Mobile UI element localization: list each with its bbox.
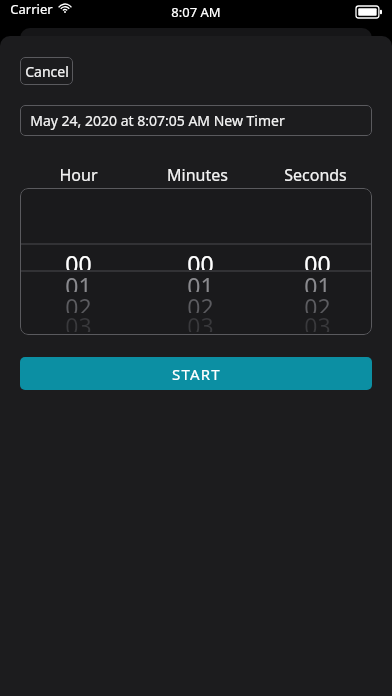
button[interactable]: Cancel bbox=[20, 57, 73, 85]
staticText: Cancel bbox=[25, 62, 69, 81]
staticText: 02 bbox=[65, 291, 92, 313]
button[interactable]: 00 bbox=[272, 188, 362, 335]
staticText: 01 bbox=[187, 270, 214, 292]
button[interactable]: START bbox=[20, 357, 372, 390]
button[interactable]: 00 bbox=[155, 188, 245, 335]
staticText: 03 bbox=[187, 310, 214, 332]
staticText: START bbox=[172, 364, 221, 384]
staticText: 03 bbox=[304, 310, 331, 332]
staticText: Seconds bbox=[284, 164, 347, 184]
button[interactable]: 00 bbox=[33, 188, 123, 335]
staticText: 02 bbox=[187, 291, 214, 313]
staticText: 01 bbox=[65, 270, 92, 292]
staticText: Hour bbox=[59, 164, 98, 184]
staticText: May 24, 2020 at 8:07:05 AM New Timer bbox=[30, 111, 285, 130]
staticText: Minutes bbox=[167, 164, 228, 184]
staticText: Carrier bbox=[10, 0, 53, 18]
staticText: 02 bbox=[304, 291, 331, 313]
staticText: 00 bbox=[187, 248, 214, 270]
staticText: 00 bbox=[65, 248, 92, 270]
staticText: 03 bbox=[65, 310, 92, 332]
staticText: 00 bbox=[304, 248, 331, 270]
staticText: 8:07 AM bbox=[171, 3, 221, 21]
button[interactable]: May 24, 2020 at 8:07:05 AM New Timer bbox=[20, 105, 372, 136]
staticText: 01 bbox=[304, 270, 331, 292]
